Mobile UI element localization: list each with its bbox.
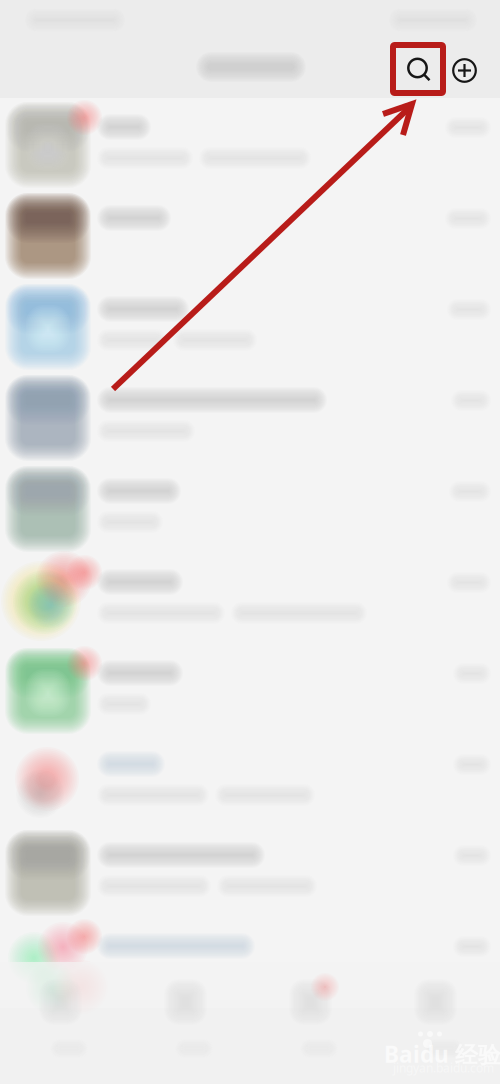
button[interactable]	[0, 371, 500, 462]
staticText: Baidu 经验	[384, 1039, 500, 1069]
button[interactable]	[0, 644, 500, 735]
button[interactable]	[0, 280, 500, 371]
button[interactable]	[0, 98, 500, 189]
button[interactable]	[0, 189, 500, 280]
button[interactable]: Search	[390, 42, 446, 96]
button[interactable]	[0, 917, 500, 1008]
button[interactable]: Me	[375, 962, 500, 1084]
button[interactable]	[0, 462, 500, 553]
button[interactable]	[0, 826, 500, 917]
button[interactable]	[0, 735, 500, 826]
button[interactable]: Chats	[0, 962, 125, 1084]
button[interactable]: Discover	[250, 962, 375, 1084]
button[interactable]: Add	[445, 51, 485, 91]
button[interactable]	[0, 553, 500, 644]
button[interactable]: Contacts	[125, 962, 250, 1084]
